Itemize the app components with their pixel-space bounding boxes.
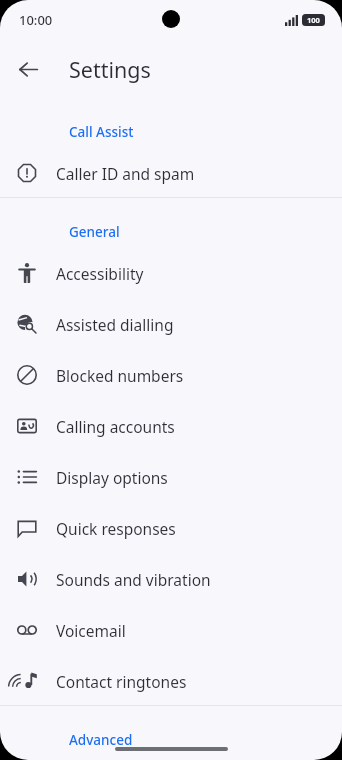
button[interactable]: Display options	[0, 452, 342, 502]
button[interactable]: Calling accounts	[0, 401, 342, 451]
staticText: Advanced	[69, 731, 133, 749]
staticText: Blocked numbers	[56, 365, 184, 386]
button[interactable]: Caller ID and spam	[0, 148, 342, 198]
staticText: Accessibility	[56, 263, 144, 284]
button[interactable]: Back	[9, 50, 47, 88]
button[interactable]: Quick responses	[0, 503, 342, 553]
button[interactable]: Contact ringtones	[0, 656, 342, 706]
button[interactable]: Blocked numbers	[0, 350, 342, 400]
staticText: General	[69, 223, 120, 241]
staticText: 100	[307, 15, 320, 25]
staticText: Display options	[56, 467, 168, 488]
staticText: Voicemail	[56, 620, 126, 641]
button[interactable]: Sounds and vibration	[0, 554, 342, 604]
staticText: 10:00	[19, 11, 53, 29]
staticText: Settings	[69, 55, 151, 84]
button[interactable]: Voicemail	[0, 605, 342, 655]
staticText: Assisted dialling	[56, 314, 174, 335]
staticText: Quick responses	[56, 518, 176, 539]
staticText: Call Assist	[69, 123, 134, 141]
staticText: Contact ringtones	[56, 671, 187, 692]
staticText: Caller ID and spam	[56, 163, 195, 184]
button[interactable]: Assisted dialling	[0, 299, 342, 349]
staticText: Sounds and vibration	[56, 569, 211, 590]
staticText: Calling accounts	[56, 416, 175, 437]
button[interactable]: Accessibility	[0, 248, 342, 298]
